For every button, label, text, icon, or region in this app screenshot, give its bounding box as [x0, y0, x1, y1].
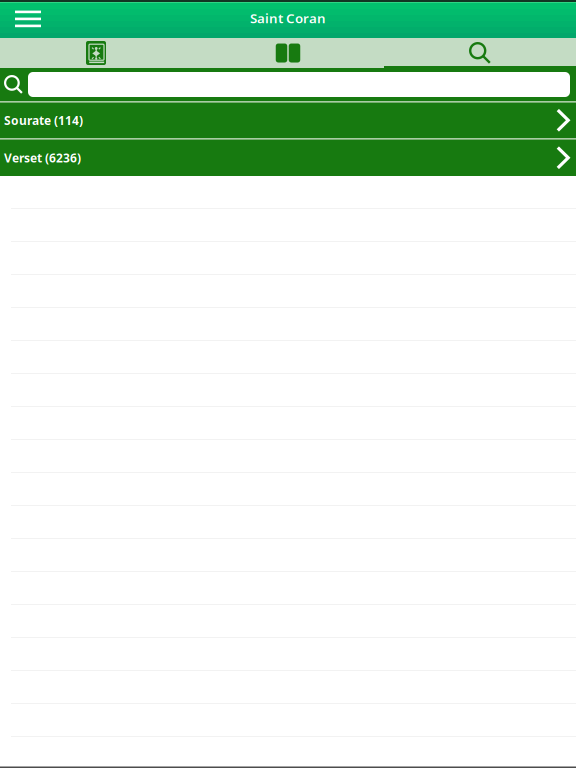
staticText: Saint Coran [250, 9, 326, 27]
staticText: Verset (6236) [4, 150, 81, 166]
button[interactable]: Quran [0, 40, 192, 66]
button[interactable]: Sourate (114) [0, 102, 576, 138]
staticText: Sourate (114) [4, 112, 83, 128]
button[interactable]: Verset (6236) [0, 139, 576, 176]
button[interactable]: Read [192, 40, 384, 66]
button[interactable]: Search [384, 40, 576, 66]
button[interactable]: Menu [0, 0, 71, 38]
